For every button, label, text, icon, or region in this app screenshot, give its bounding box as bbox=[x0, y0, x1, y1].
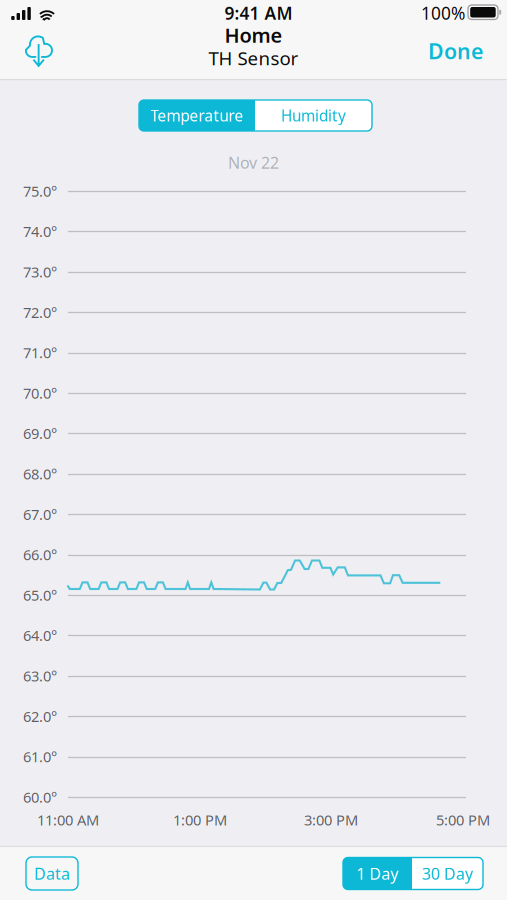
staticText: 100% bbox=[421, 1, 465, 24]
staticText: 1:00 PM bbox=[173, 810, 227, 829]
staticText: 71.0° bbox=[23, 343, 57, 362]
staticText: 1 Day bbox=[356, 863, 398, 884]
staticText: 9:41 AM bbox=[224, 1, 292, 24]
staticText: 62.0° bbox=[23, 706, 57, 726]
button[interactable]: Done bbox=[421, 31, 483, 71]
button[interactable]: 30 Day bbox=[412, 857, 483, 889]
button[interactable]: Data bbox=[26, 857, 78, 890]
staticText: Data bbox=[34, 863, 70, 884]
staticText: 63.0° bbox=[23, 666, 57, 686]
staticText: Nov 22 bbox=[228, 152, 279, 173]
button[interactable]: Humidity bbox=[255, 100, 372, 131]
staticText: Humidity bbox=[281, 105, 346, 126]
button[interactable]: Download data bbox=[14, 28, 54, 68]
staticText: 74.0° bbox=[23, 222, 57, 241]
staticText: 64.0° bbox=[23, 626, 57, 645]
staticText: 3:00 PM bbox=[304, 810, 358, 829]
staticText: 70.0° bbox=[23, 383, 57, 403]
button[interactable]: Temperature bbox=[139, 100, 255, 131]
staticText: 66.0° bbox=[23, 545, 57, 564]
staticText: 60.0° bbox=[23, 787, 57, 807]
staticText: Home bbox=[224, 22, 282, 48]
staticText: 68.0° bbox=[23, 464, 57, 484]
staticText: 69.0° bbox=[23, 424, 57, 443]
staticText: 73.0° bbox=[23, 262, 57, 282]
staticText: TH Sensor bbox=[208, 46, 298, 70]
staticText: Temperature bbox=[150, 105, 243, 126]
staticText: 65.0° bbox=[23, 585, 57, 605]
button[interactable]: 1 Day bbox=[343, 857, 412, 889]
staticText: Done bbox=[428, 37, 483, 65]
staticText: 61.0° bbox=[23, 747, 57, 766]
staticText: 75.0° bbox=[23, 181, 57, 201]
staticText: 30 Day bbox=[422, 863, 473, 884]
staticText: 72.0° bbox=[23, 302, 57, 322]
staticText: 11:00 AM bbox=[37, 810, 99, 829]
staticText: 67.0° bbox=[23, 504, 57, 524]
staticText: 5:00 PM bbox=[436, 810, 490, 829]
